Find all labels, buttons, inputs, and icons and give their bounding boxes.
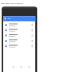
button[interactable]: Recording 2 [3,28,35,33]
staticText: Manage Recordings [1,2,23,5]
button[interactable]: Recording 3 [3,33,35,38]
button[interactable]: Recents [26,64,33,69]
button[interactable]: Recording 1 [3,23,35,28]
button[interactable]: Recording 5 [3,44,35,49]
button[interactable]: Recording 4 [3,39,35,44]
button[interactable]: Navigate up [4,17,7,21]
button[interactable]: Home [18,64,25,69]
button[interactable]: Back [10,64,17,69]
